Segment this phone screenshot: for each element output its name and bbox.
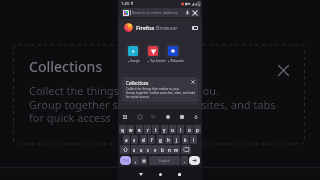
- staticText: i: [180, 127, 182, 133]
- button[interactable]: i: [177, 125, 184, 134]
- staticText: g: [159, 137, 162, 143]
- button[interactable]: t: [152, 125, 159, 134]
- button[interactable]: y: [161, 125, 168, 134]
- button[interactable]: d: [140, 135, 147, 144]
- staticText: t: [155, 127, 157, 133]
- button[interactable]: g: [157, 135, 164, 144]
- button[interactable]: Voice input: [193, 114, 198, 119]
- button[interactable]: e: [136, 125, 143, 134]
- button[interactable]: k: [182, 135, 189, 144]
- button[interactable]: u: [169, 125, 176, 134]
- staticText: z: [133, 147, 136, 153]
- button[interactable]: Dismiss: [191, 80, 195, 84]
- button[interactable]: Emoji: [165, 114, 170, 119]
- staticText: .: [184, 158, 186, 164]
- button[interactable]: Shift: [120, 145, 130, 154]
- staticText: x: [140, 147, 143, 153]
- staticText: ,: [135, 158, 137, 164]
- staticText: d: [142, 137, 145, 143]
- staticText: n: [168, 147, 171, 153]
- staticText: Wikipedia: [170, 59, 184, 63]
- button[interactable]: n: [166, 145, 173, 154]
- button[interactable]: Clear search: [192, 10, 198, 16]
- button[interactable]: ?123: [120, 156, 131, 165]
- button[interactable]: Search or enter address: [121, 8, 200, 17]
- staticText: ?123: [122, 159, 129, 163]
- staticText: Browser: [156, 24, 178, 32]
- button[interactable]: Keyboard settings: [122, 114, 127, 119]
- button[interactable]: Voice search: [185, 10, 190, 15]
- staticText: Collect the things that matter to you. G…: [126, 87, 195, 99]
- button[interactable]: q: [119, 125, 126, 134]
- staticText: s: [133, 137, 136, 143]
- staticText: m: [174, 147, 179, 153]
- staticText: j: [176, 137, 178, 143]
- staticText: h: [167, 137, 170, 143]
- button[interactable]: f: [148, 135, 155, 144]
- staticText: Google: [130, 59, 140, 63]
- staticText: English: [159, 159, 170, 163]
- button[interactable]: Change language: [140, 156, 147, 165]
- button[interactable]: ,: [132, 156, 139, 165]
- staticText: q: [121, 127, 124, 133]
- button[interactable]: Tabs: [192, 26, 198, 30]
- button[interactable]: l: [190, 135, 197, 144]
- staticText: Collections: [29, 57, 103, 76]
- staticText: 1:25: [121, 1, 130, 7]
- button[interactable]: Clipboard: [137, 114, 142, 119]
- button[interactable]: v: [152, 145, 159, 154]
- staticText: Collect the things that matter to you. G…: [29, 83, 276, 125]
- staticText: u: [171, 127, 174, 133]
- staticText: p: [196, 127, 199, 133]
- button[interactable]: o: [186, 125, 193, 134]
- button[interactable]: Go: [189, 156, 200, 165]
- staticText: o: [188, 127, 191, 133]
- staticText: y: [163, 127, 166, 133]
- button[interactable]: h: [165, 135, 172, 144]
- button[interactable]: Stickers: [179, 114, 184, 119]
- button[interactable]: r: [144, 125, 151, 134]
- staticText: b: [161, 147, 164, 153]
- staticText: f: [151, 137, 153, 143]
- button[interactable]: c: [145, 145, 152, 154]
- staticText: c: [147, 147, 150, 153]
- staticText: l: [193, 137, 195, 143]
- button[interactable]: Back: [137, 170, 145, 178]
- staticText: r: [147, 127, 149, 133]
- staticText: k: [184, 137, 187, 143]
- button[interactable]: Recent apps: [175, 170, 183, 178]
- button[interactable]: j: [173, 135, 180, 144]
- button[interactable]: m: [173, 145, 180, 154]
- button[interactable]: p: [194, 125, 201, 134]
- button[interactable]: Home: [156, 170, 164, 178]
- staticText: Top Articles: [150, 59, 166, 63]
- button[interactable]: x: [138, 145, 145, 154]
- button[interactable]: z: [131, 145, 138, 154]
- button[interactable]: Google: [128, 46, 138, 56]
- button[interactable]: Wikipedia: [168, 46, 178, 56]
- button[interactable]: w: [127, 125, 134, 134]
- staticText: w: [129, 127, 133, 133]
- staticText: Collections: [126, 80, 149, 86]
- button[interactable]: Top Articles: [148, 46, 158, 56]
- staticText: Search or enter address: [132, 10, 178, 16]
- staticText: v: [154, 147, 157, 153]
- staticText: a: [125, 137, 128, 143]
- button[interactable]: a: [123, 135, 130, 144]
- button[interactable]: .: [181, 156, 188, 165]
- button[interactable]: Close: [277, 64, 290, 77]
- button[interactable]: Backspace: [181, 145, 191, 154]
- staticText: e: [138, 127, 141, 133]
- staticText: GIF: [151, 115, 156, 119]
- button[interactable]: s: [131, 135, 138, 144]
- staticText: Firefox: [136, 24, 155, 32]
- button[interactable]: English: [149, 156, 180, 165]
- button[interactable]: b: [159, 145, 166, 154]
